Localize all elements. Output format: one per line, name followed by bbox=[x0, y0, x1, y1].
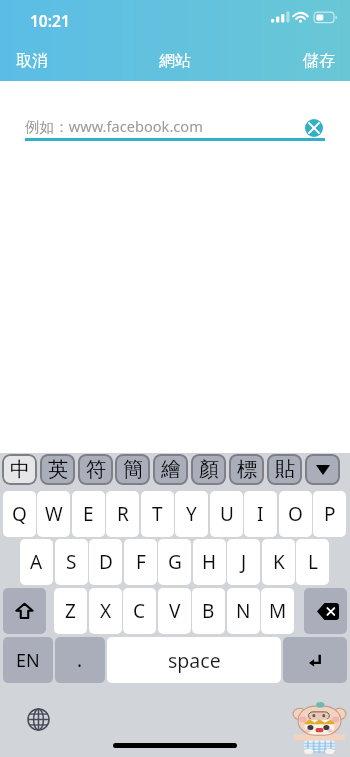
button[interactable]: G bbox=[158, 539, 191, 585]
staticText: G bbox=[168, 549, 182, 575]
button[interactable]: F bbox=[124, 539, 157, 585]
button[interactable]: Return bbox=[283, 637, 347, 683]
button[interactable]: . bbox=[55, 637, 105, 683]
staticText: 貼 bbox=[275, 457, 295, 482]
staticText: 符 bbox=[86, 457, 106, 482]
button[interactable]: B bbox=[192, 588, 225, 634]
button[interactable]: 貼 bbox=[267, 454, 302, 485]
button[interactable]: Z bbox=[54, 588, 87, 634]
button[interactable]: H bbox=[193, 539, 226, 585]
button[interactable]: L bbox=[296, 539, 329, 585]
staticText: O bbox=[288, 501, 303, 527]
button[interactable]: Shift bbox=[3, 588, 46, 634]
staticText: W bbox=[45, 501, 63, 527]
button[interactable]: space bbox=[107, 637, 281, 683]
button[interactable]: 英 bbox=[40, 454, 75, 485]
button[interactable]: E bbox=[72, 491, 105, 537]
staticText: 網站 bbox=[159, 51, 191, 71]
staticText: 例如：www.facebook.com bbox=[25, 116, 203, 136]
staticText: 儲存 bbox=[303, 51, 335, 71]
button[interactable]: M bbox=[261, 588, 294, 634]
button[interactable]: 符 bbox=[78, 454, 113, 485]
staticText: EN bbox=[16, 648, 40, 673]
staticText: B bbox=[202, 598, 215, 624]
button[interactable]: U bbox=[210, 491, 243, 537]
staticText: 10:21 bbox=[30, 10, 70, 31]
staticText: 取消 bbox=[16, 51, 48, 71]
staticText: X bbox=[100, 598, 112, 624]
button[interactable]: 儲存 bbox=[287, 47, 350, 75]
staticText: J bbox=[241, 549, 247, 575]
staticText: 標 bbox=[237, 457, 257, 482]
button[interactable]: X bbox=[89, 588, 122, 634]
staticText: 中 bbox=[10, 457, 30, 482]
button[interactable]: V bbox=[158, 588, 191, 634]
button[interactable]: Clear text bbox=[305, 119, 323, 137]
staticText: S bbox=[66, 549, 77, 575]
button[interactable]: P bbox=[313, 491, 346, 537]
button[interactable]: I bbox=[244, 491, 277, 537]
button[interactable]: T bbox=[141, 491, 174, 537]
staticText: 繪 bbox=[161, 457, 181, 482]
staticText: F bbox=[136, 549, 146, 575]
button[interactable]: 顏 bbox=[191, 454, 226, 485]
staticText: C bbox=[133, 598, 146, 624]
staticText: D bbox=[99, 549, 113, 575]
button[interactable]: Hide keyboard bbox=[305, 454, 340, 485]
staticText: Y bbox=[186, 501, 197, 527]
staticText: . bbox=[77, 647, 83, 673]
staticText: A bbox=[30, 549, 43, 575]
button[interactable]: 簡 bbox=[115, 454, 150, 485]
staticText: R bbox=[117, 501, 129, 527]
staticText: K bbox=[273, 549, 285, 575]
staticText: Q bbox=[12, 501, 27, 527]
button[interactable]: W bbox=[37, 491, 70, 537]
button[interactable]: J bbox=[227, 539, 260, 585]
staticText: 簡 bbox=[123, 457, 143, 482]
button[interactable]: Change keyboard language bbox=[22, 703, 54, 735]
staticText: I bbox=[257, 501, 264, 527]
button[interactable]: C bbox=[123, 588, 156, 634]
button[interactable]: Y bbox=[175, 491, 208, 537]
staticText: V bbox=[169, 598, 181, 624]
staticText: 顏 bbox=[199, 457, 219, 482]
button[interactable]: K bbox=[262, 539, 295, 585]
staticText: Z bbox=[65, 598, 76, 624]
staticText: 英 bbox=[48, 457, 68, 482]
button[interactable]: D bbox=[89, 539, 122, 585]
staticText: T bbox=[152, 501, 163, 527]
button[interactable]: A bbox=[20, 539, 53, 585]
button[interactable]: 中 bbox=[2, 454, 37, 485]
staticText: P bbox=[324, 501, 336, 527]
button[interactable]: 繪 bbox=[153, 454, 188, 485]
button[interactable]: R bbox=[106, 491, 139, 537]
staticText: M bbox=[269, 598, 287, 624]
staticText: N bbox=[236, 598, 251, 624]
staticText: L bbox=[308, 549, 318, 575]
button[interactable]: S bbox=[55, 539, 88, 585]
button[interactable]: O bbox=[279, 491, 312, 537]
staticText: U bbox=[220, 501, 234, 527]
button[interactable]: 標 bbox=[229, 454, 264, 485]
button[interactable]: Q bbox=[3, 491, 36, 537]
staticText: space bbox=[168, 647, 221, 674]
button[interactable]: EN bbox=[3, 637, 53, 683]
button[interactable]: 取消 bbox=[0, 47, 64, 75]
staticText: H bbox=[202, 549, 217, 575]
button[interactable]: N bbox=[227, 588, 260, 634]
staticText: E bbox=[83, 501, 94, 527]
button[interactable]: Backspace bbox=[304, 588, 347, 634]
